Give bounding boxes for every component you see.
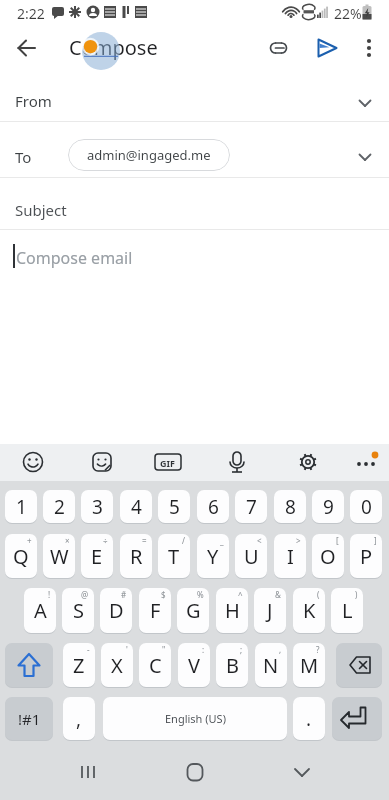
button[interactable]: To xyxy=(0,122,389,177)
staticText: W xyxy=(50,543,69,570)
button[interactable] xyxy=(68,750,108,794)
button[interactable]: J xyxy=(254,588,286,633)
button[interactable] xyxy=(332,697,382,740)
button[interactable]: English (US) xyxy=(103,697,287,740)
button[interactable] xyxy=(350,29,388,67)
button[interactable]: Subject xyxy=(0,178,389,229)
staticText: ^ xyxy=(238,589,243,600)
button[interactable]: H xyxy=(216,588,248,633)
staticText: Subject xyxy=(15,200,67,220)
button[interactable]: T xyxy=(158,534,190,578)
button[interactable]: I xyxy=(274,534,306,578)
staticText: G xyxy=(186,597,201,624)
staticText: 0 xyxy=(361,494,372,520)
button[interactable]: From xyxy=(0,72,389,121)
button[interactable]: P xyxy=(350,534,382,578)
staticText: # xyxy=(121,589,127,600)
staticText: R xyxy=(130,543,143,570)
staticText: Y xyxy=(207,543,219,570)
staticText: J xyxy=(267,597,273,624)
button[interactable]: 1 xyxy=(5,490,37,523)
button[interactable]: 7 xyxy=(235,490,267,523)
button[interactable] xyxy=(5,643,53,687)
staticText: O xyxy=(320,543,336,570)
button[interactable] xyxy=(261,29,299,67)
staticText: B xyxy=(226,652,239,679)
button[interactable]: Y xyxy=(197,534,229,578)
staticText: Compose email xyxy=(16,247,133,269)
staticText: & xyxy=(275,589,281,600)
button[interactable]: W xyxy=(43,534,75,578)
staticText: ! xyxy=(48,589,51,600)
button[interactable]: G xyxy=(177,588,209,633)
button[interactable]: S xyxy=(62,588,94,633)
button[interactable]: , xyxy=(63,697,95,740)
button[interactable]: K xyxy=(293,588,325,633)
button[interactable] xyxy=(175,750,215,794)
button[interactable]: R xyxy=(120,534,152,578)
button[interactable]: admin@ingaged.me xyxy=(68,139,230,171)
button[interactable]: E xyxy=(81,534,113,578)
staticText: 3 xyxy=(92,494,103,520)
button[interactable] xyxy=(308,29,346,67)
staticText: 7 xyxy=(246,494,257,520)
staticText: !#1 xyxy=(18,709,41,729)
button[interactable]: 2 xyxy=(43,490,75,523)
staticText: H xyxy=(225,597,240,624)
staticText: / xyxy=(182,535,185,546)
button[interactable]: A xyxy=(24,588,56,633)
button[interactable]: . xyxy=(293,697,325,740)
staticText: ? xyxy=(316,644,320,655)
button[interactable]: 3 xyxy=(81,490,113,523)
staticText: - xyxy=(87,644,90,655)
staticText: 9 xyxy=(323,494,334,520)
button[interactable]: 4 xyxy=(120,490,152,523)
staticText: V xyxy=(188,652,200,679)
staticText: GIF xyxy=(160,457,175,469)
button[interactable]: O xyxy=(312,534,344,578)
staticText: A xyxy=(34,597,47,624)
button[interactable]: 5 xyxy=(158,490,190,523)
button[interactable] xyxy=(8,29,46,67)
staticText: S xyxy=(73,597,84,624)
button[interactable] xyxy=(282,750,322,794)
staticText: N xyxy=(263,652,279,679)
staticText: C xyxy=(149,652,162,679)
button[interactable]: C xyxy=(139,643,171,687)
staticText: 1 xyxy=(16,494,27,520)
button[interactable]: 8 xyxy=(274,490,306,523)
button[interactable]: Z xyxy=(63,643,95,687)
staticText: K xyxy=(303,597,316,624)
staticText: < xyxy=(257,535,262,546)
staticText: " xyxy=(162,644,166,655)
staticText: admin@ingaged.me xyxy=(87,146,211,164)
button[interactable]: X xyxy=(101,643,133,687)
button[interactable]: Q xyxy=(5,534,37,578)
staticText: > xyxy=(296,535,301,546)
button[interactable]: D xyxy=(100,588,132,633)
staticText: M xyxy=(300,652,319,679)
button[interactable]: 9 xyxy=(312,490,344,523)
staticText: P xyxy=(360,543,373,570)
button[interactable]: 6 xyxy=(197,490,229,523)
button[interactable] xyxy=(336,643,382,687)
staticText: ] xyxy=(374,535,377,546)
button[interactable]: Compose email xyxy=(0,230,389,444)
button[interactable]: M xyxy=(293,643,325,687)
button[interactable]: !#1 xyxy=(5,697,53,740)
button[interactable]: U xyxy=(235,534,267,578)
button[interactable]: F xyxy=(139,588,171,633)
staticText: ( xyxy=(317,589,320,600)
staticText: @ xyxy=(81,589,89,600)
button[interactable]: V xyxy=(178,643,210,687)
staticText: F xyxy=(150,597,161,624)
button[interactable]: B xyxy=(216,643,248,687)
staticText: × xyxy=(65,535,70,546)
button[interactable]: N xyxy=(255,643,287,687)
staticText: . xyxy=(306,706,312,732)
staticText: T xyxy=(168,543,180,570)
staticText: + xyxy=(27,535,32,546)
button[interactable]: L xyxy=(331,588,363,633)
button[interactable]: 0 xyxy=(350,490,382,523)
staticText: 8 xyxy=(285,494,296,520)
